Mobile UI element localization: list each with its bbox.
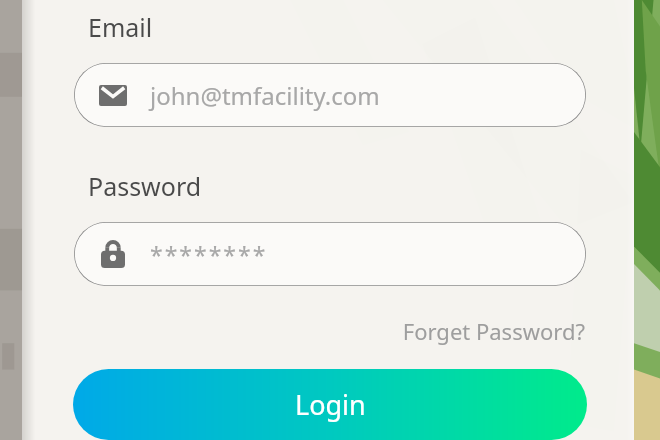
button[interactable]: Email: [74, 63, 586, 127]
staticText: Forget Password?: [402, 316, 585, 346]
button[interactable]: Password: [74, 222, 586, 286]
staticText: Login: [295, 386, 366, 423]
staticText: Email: [88, 10, 153, 44]
other: Password: [101, 240, 125, 268]
other: Email: [99, 85, 127, 106]
staticText: Password: [88, 169, 202, 203]
button[interactable]: Forget Password?: [400, 314, 587, 348]
staticText: john@tmfacility.com: [150, 79, 380, 112]
button[interactable]: Login: [73, 369, 587, 440]
staticText: ********: [150, 239, 268, 270]
